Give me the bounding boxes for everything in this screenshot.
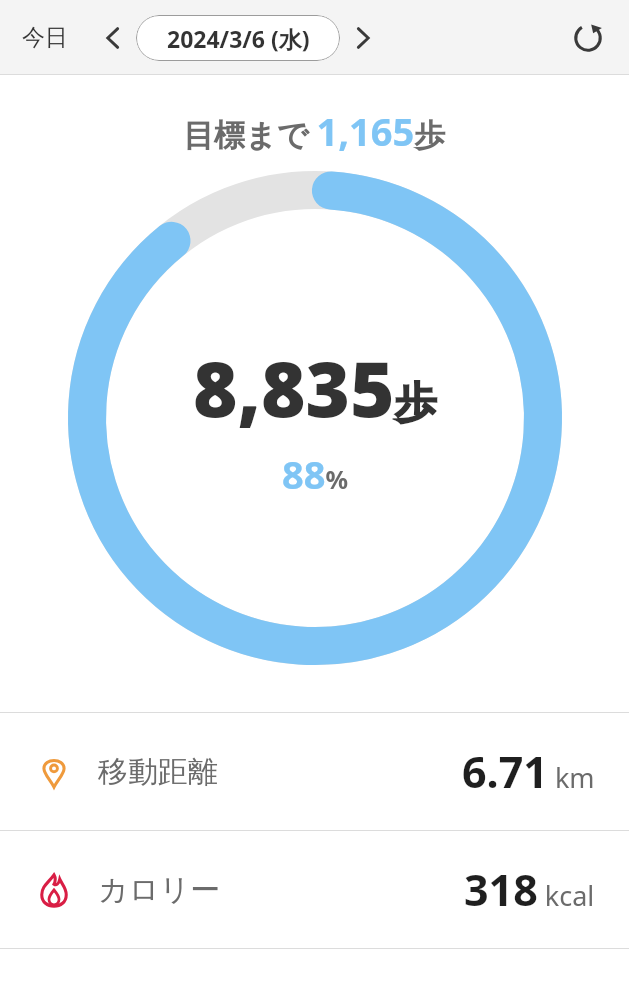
button[interactable]: Distance	[0, 713, 629, 830]
button[interactable]: Previous day	[90, 15, 136, 61]
staticText: カロリー	[98, 871, 221, 909]
button[interactable]: Next day	[340, 15, 386, 61]
staticText: 移動距離	[98, 753, 218, 791]
button[interactable]: 2024/3/6 (水)	[136, 15, 340, 61]
button[interactable]: 今日	[14, 15, 76, 60]
other: Distance	[36, 754, 72, 790]
staticText: 88%	[282, 448, 349, 500]
staticText: 今日	[22, 23, 68, 52]
button[interactable]: Calories	[0, 831, 629, 948]
staticText: 318 kcal	[464, 860, 595, 919]
button[interactable]: Refresh	[563, 13, 613, 63]
other: Calories	[36, 872, 72, 908]
staticText: 目標まで 1,165歩	[183, 105, 446, 157]
staticText: 8,835歩	[193, 336, 437, 440]
staticText: 6.71 km	[462, 742, 595, 801]
staticText: 2024/3/6 (水)	[167, 23, 310, 54]
